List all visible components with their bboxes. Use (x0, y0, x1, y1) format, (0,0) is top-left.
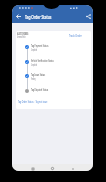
button[interactable]: Track Order (69, 34, 82, 38)
button[interactable]: Home (49, 165, 56, 171)
button[interactable]: Tag Payment Status (31, 43, 48, 52)
button[interactable]: Share (84, 12, 93, 21)
staticText: Tag Payment Status (31, 43, 48, 48)
staticText: Track Order (69, 34, 82, 38)
button[interactable]: Recent apps (29, 165, 36, 171)
button[interactable]: Go back (69, 165, 76, 171)
staticText: Tag Order Status : Tag not issue (18, 100, 48, 104)
staticText: Pending (31, 77, 36, 81)
staticText: Commercial Vehicle (17, 35, 26, 39)
staticText: Tag Issue Status (31, 72, 46, 77)
staticText: Tag Dispatch Status (31, 87, 48, 92)
staticText: Completed (31, 48, 37, 52)
button[interactable]: Tag Issue Status (31, 72, 45, 81)
button[interactable]: Tag Order Status : Tag not issue (18, 100, 47, 104)
button[interactable]: Vehicle Verification Status (31, 58, 53, 67)
staticText: Vehicle Verification Status (31, 58, 54, 63)
staticText: 6LGTCR0B0G (17, 31, 28, 36)
staticText: Completed (31, 63, 37, 67)
button[interactable]: Back (14, 12, 23, 21)
staticText: Tag Order Status (25, 14, 52, 20)
button[interactable]: Tag Dispatch Status (31, 87, 48, 92)
